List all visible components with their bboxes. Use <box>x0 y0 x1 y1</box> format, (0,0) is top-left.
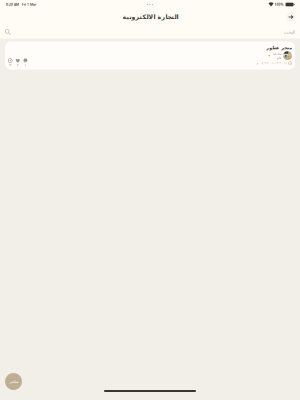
staticText: 100% <box>274 2 286 7</box>
button[interactable]: Go live <box>5 373 22 390</box>
button[interactable]: Views <box>8 58 12 67</box>
staticText: ٢ <box>17 63 19 67</box>
staticText: ٢٠٢٤-٠٣-٠١ ٠٨:٢٣ م <box>256 61 287 65</box>
button[interactable]: Back <box>285 11 297 23</box>
button[interactable]: Comment <box>23 58 28 67</box>
staticText: عام <box>276 56 281 60</box>
staticText: مباشر <box>9 379 18 384</box>
staticText: ٣ <box>9 63 11 67</box>
button[interactable]: Like <box>16 58 20 67</box>
button[interactable]: البحث <box>0 25 300 39</box>
staticText: البحث <box>283 29 294 35</box>
staticText: متابعة <box>272 51 281 55</box>
button[interactable]: ٣ <box>5 41 295 69</box>
staticText: ١ <box>24 63 26 67</box>
staticText: متجر عطور <box>266 45 292 50</box>
staticText: 8:20 AM Fri 1 Mar <box>6 2 36 7</box>
staticText: التجارة الالكترونية <box>122 13 178 20</box>
